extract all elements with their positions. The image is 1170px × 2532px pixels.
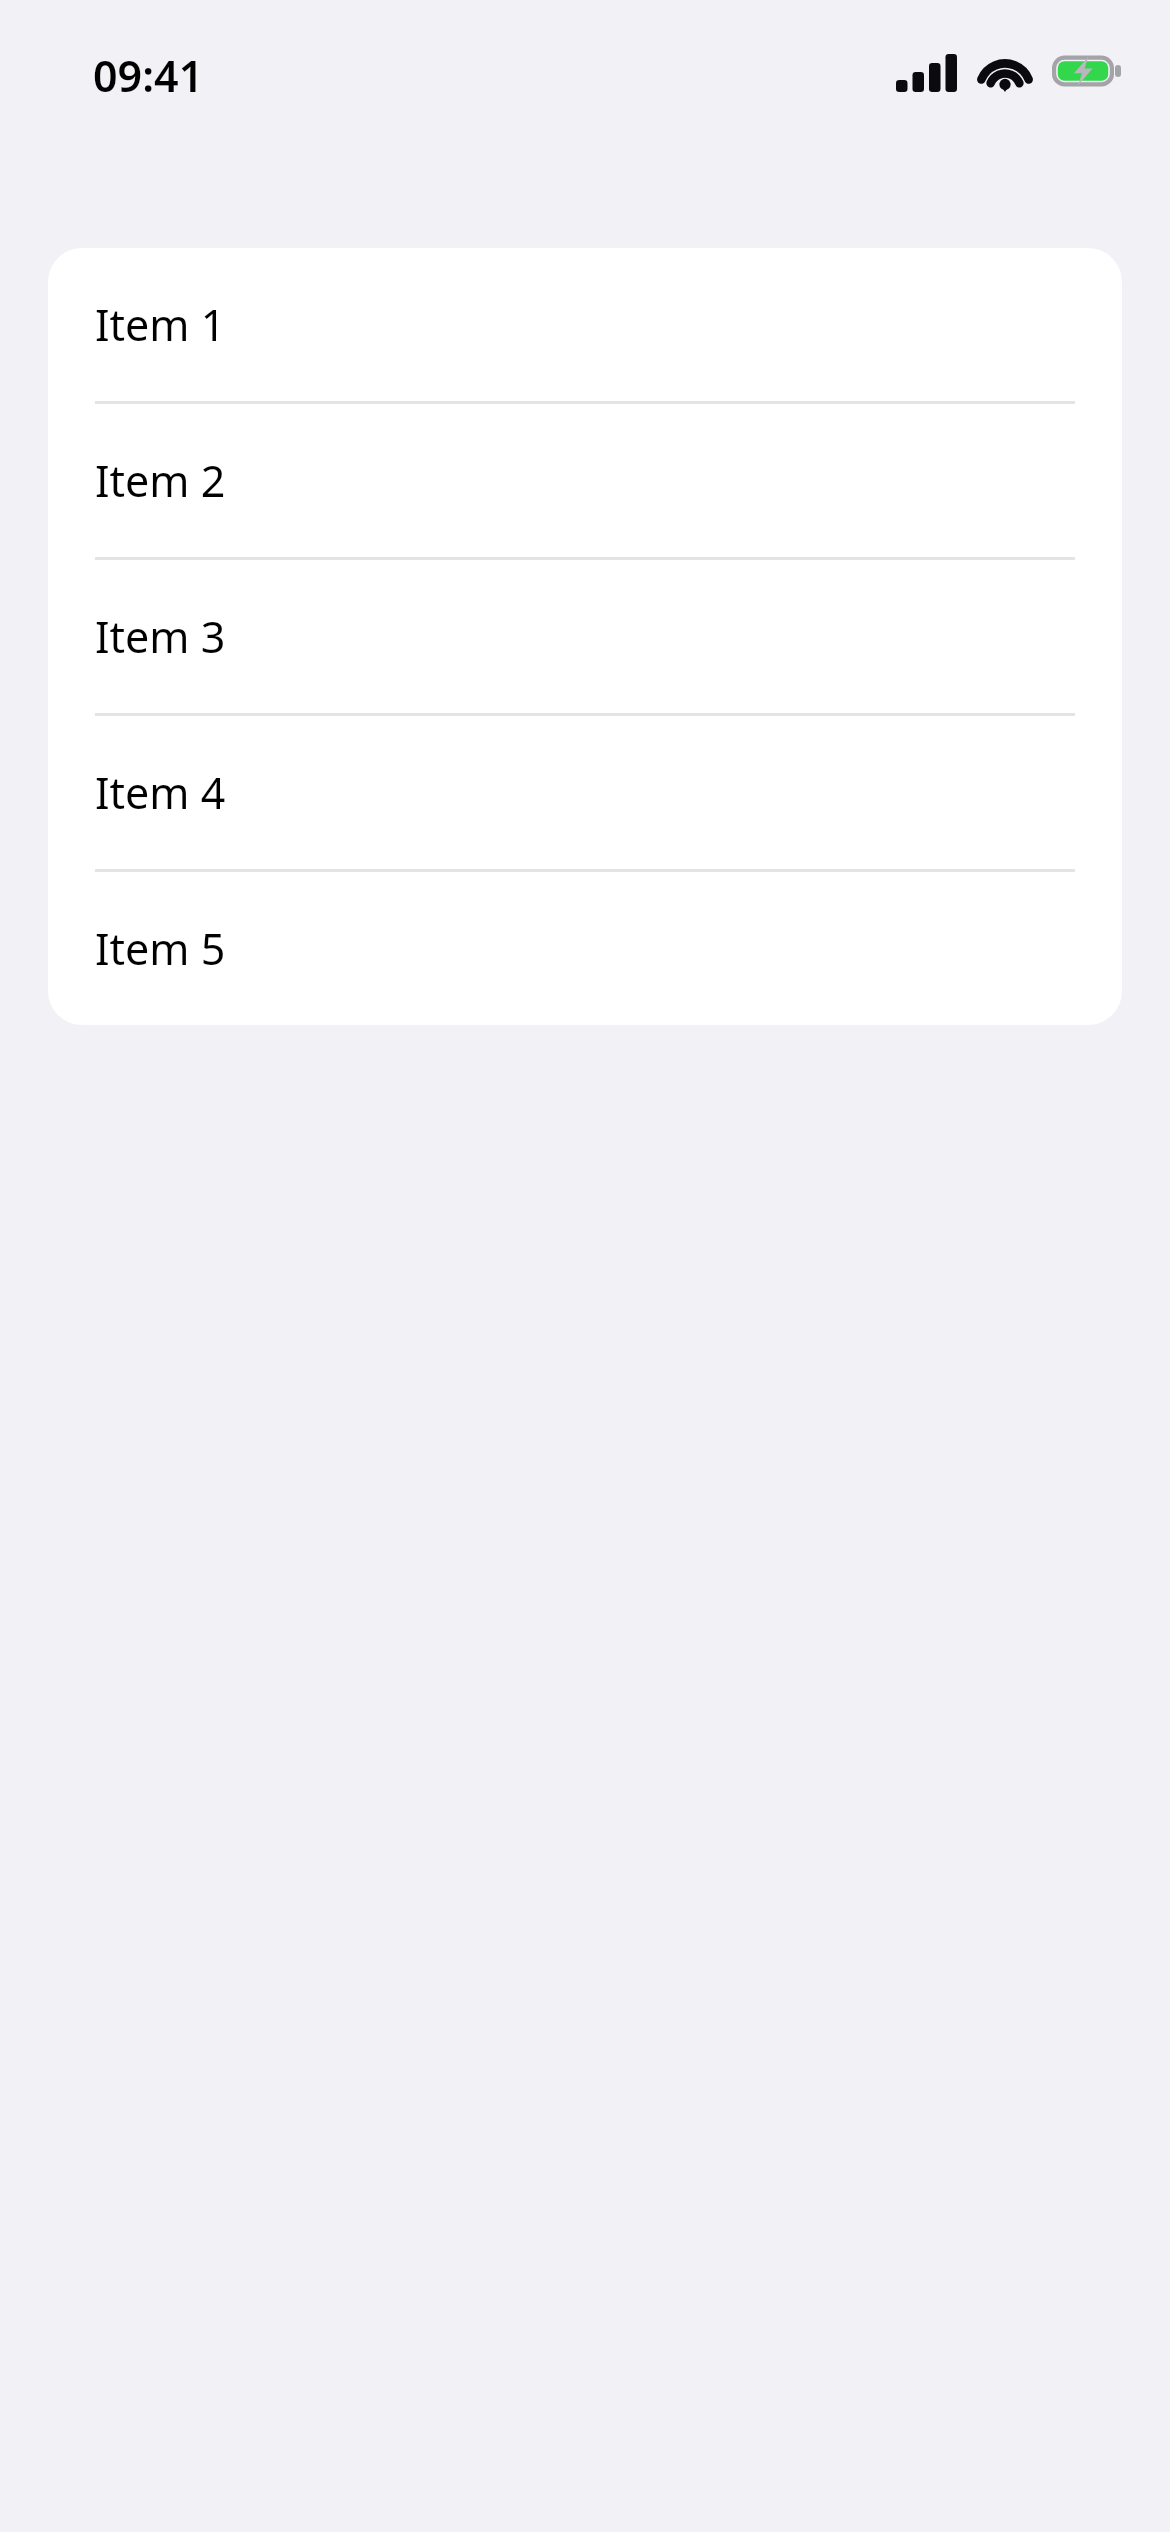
staticText: Item 5 xyxy=(95,919,226,978)
button[interactable]: Item 4 xyxy=(48,716,1122,869)
button[interactable]: Item 5 xyxy=(48,872,1122,1025)
button[interactable]: Item 3 xyxy=(48,560,1122,713)
staticText: Item 4 xyxy=(95,763,226,822)
staticText: 09:41 xyxy=(93,46,204,105)
staticText: Item 3 xyxy=(95,607,226,666)
staticText: Item 1 xyxy=(95,295,226,354)
staticText: Item 2 xyxy=(95,451,226,510)
button[interactable]: Item 1 xyxy=(48,248,1122,401)
button[interactable]: Item 2 xyxy=(48,404,1122,557)
